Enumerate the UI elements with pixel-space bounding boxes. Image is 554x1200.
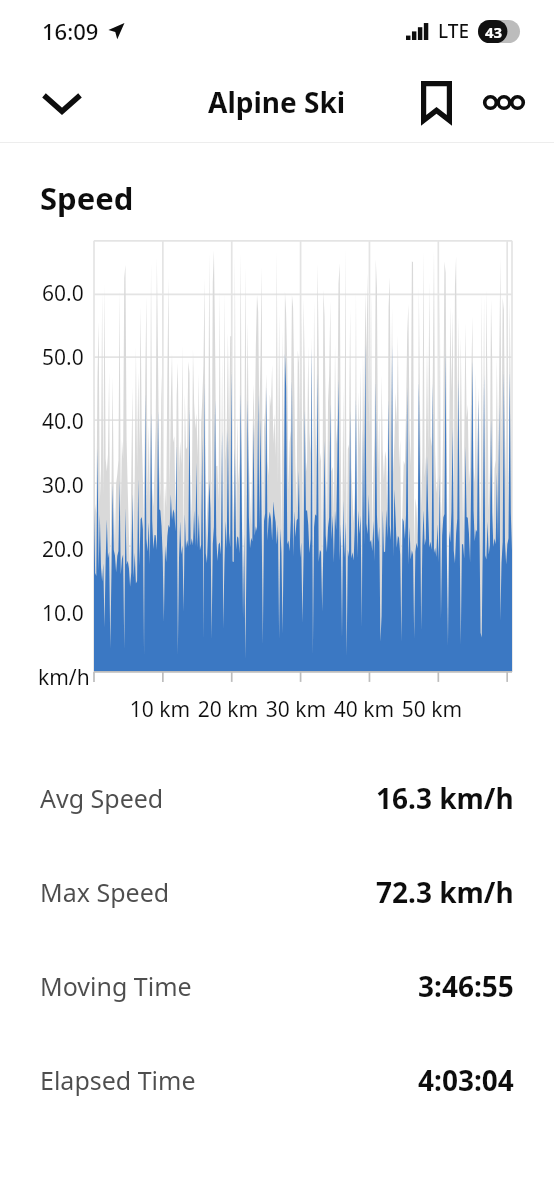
button[interactable]: Max Speed [0,845,554,939]
staticText: 72.3 km/h [376,873,514,911]
button[interactable]: Save [402,68,470,136]
staticText: 40.0 [42,407,84,436]
staticText: 50.0 [42,343,84,372]
button[interactable]: More options [470,68,538,136]
staticText: Elapsed Time [40,1063,196,1097]
staticText: Speed [40,177,134,219]
staticText: 30 km [262,695,330,724]
staticText: Alpine Ski [208,83,346,121]
staticText: km/h [38,663,90,692]
button[interactable]: Avg Speed [0,751,554,845]
staticText: Max Speed [40,875,170,909]
staticText: 10.0 [42,599,84,628]
staticText: Moving Time [40,969,192,1003]
button[interactable]: Elapsed Time [0,1033,554,1127]
staticText: 10 km [126,695,194,724]
staticText: 40 km [330,695,398,724]
staticText: 3:46:55 [418,967,514,1005]
staticText: 20.0 [42,535,84,564]
button[interactable]: Moving Time [0,939,554,1033]
staticText: 16.3 km/h [376,779,514,817]
staticText: Avg Speed [40,781,164,815]
staticText: 30.0 [42,471,84,500]
staticText: 20 km [194,695,262,724]
staticText: 16:09 [42,16,99,46]
staticText: 43 [485,22,503,42]
staticText: 4:03:04 [418,1061,514,1099]
button[interactable]: Collapse [26,66,98,138]
staticText: 50 km [398,695,466,724]
staticText: 60.0 [42,279,84,308]
staticText: LTE [438,18,470,44]
